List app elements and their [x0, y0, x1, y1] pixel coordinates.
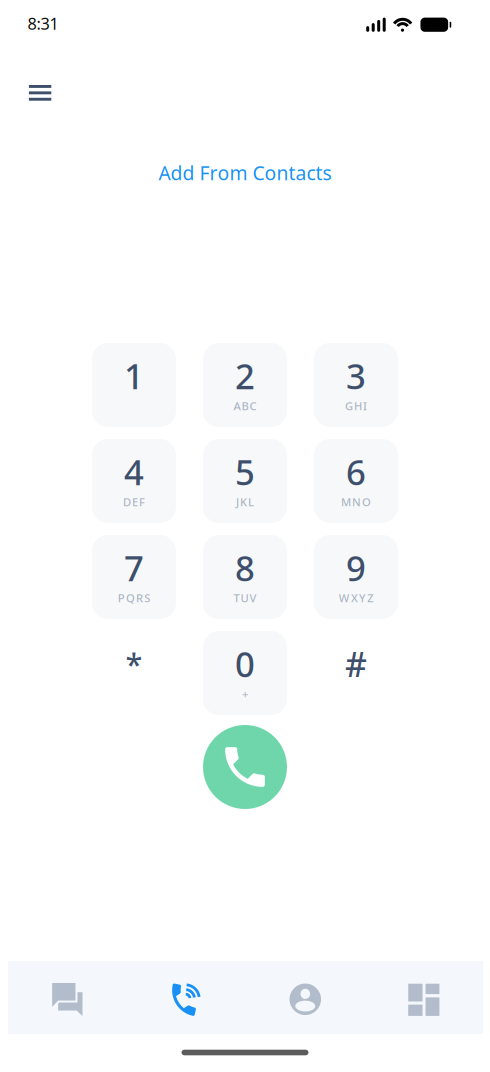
- button[interactable]: #: [314, 631, 398, 715]
- button[interactable]: 1: [92, 343, 176, 427]
- button[interactable]: *: [92, 631, 176, 715]
- staticText: +: [242, 686, 248, 701]
- staticText: 6: [346, 448, 366, 495]
- staticText: 0: [235, 640, 255, 687]
- staticText: MNO: [341, 494, 371, 509]
- button[interactable]: 3: [314, 343, 398, 427]
- staticText: #: [345, 641, 367, 687]
- staticText: GHI: [345, 398, 367, 413]
- staticText: *: [125, 643, 142, 684]
- button[interactable]: More: [364, 961, 483, 1034]
- button[interactable]: Messages: [8, 961, 127, 1034]
- staticText: 1: [124, 352, 144, 399]
- staticText: 7: [124, 544, 144, 591]
- staticText: DEF: [123, 494, 145, 509]
- staticText: Add From Contacts: [158, 159, 331, 186]
- staticText: TUV: [233, 590, 257, 605]
- button[interactable]: 9: [314, 535, 398, 619]
- button[interactable]: 4: [92, 439, 176, 523]
- button[interactable]: Menu: [15, 71, 65, 115]
- staticText: 8: [235, 544, 255, 591]
- staticText: WXYZ: [339, 590, 373, 605]
- button[interactable]: Contacts: [245, 961, 364, 1034]
- button[interactable]: Keypad: [127, 961, 246, 1034]
- staticText: JKL: [236, 494, 254, 509]
- staticText: 2: [235, 352, 255, 399]
- button[interactable]: 6: [314, 439, 398, 523]
- staticText: PQRS: [118, 590, 150, 605]
- button[interactable]: 0: [203, 631, 287, 715]
- button[interactable]: 2: [203, 343, 287, 427]
- button[interactable]: Call: [203, 725, 287, 809]
- button[interactable]: 8: [203, 535, 287, 619]
- staticText: 5: [235, 448, 255, 495]
- button[interactable]: Add From Contacts: [144, 152, 345, 193]
- staticText: 3: [346, 352, 366, 399]
- button[interactable]: 5: [203, 439, 287, 523]
- staticText: ABC: [233, 398, 257, 413]
- staticText: 4: [124, 448, 144, 495]
- button[interactable]: 7: [92, 535, 176, 619]
- staticText: 8:31: [27, 12, 58, 35]
- staticText: 9: [346, 544, 366, 591]
